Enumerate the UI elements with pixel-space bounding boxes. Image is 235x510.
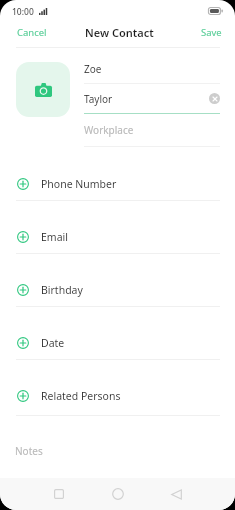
staticText: Email: [41, 230, 68, 244]
staticText: Phone Number: [41, 177, 117, 191]
staticText: Date: [41, 336, 65, 350]
button[interactable]: Zoe: [84, 56, 220, 82]
staticText: Related Persons: [41, 389, 121, 403]
staticText: Zoe: [84, 62, 102, 76]
staticText: Notes: [15, 444, 43, 458]
button[interactable]: Date: [0, 317, 235, 369]
button[interactable]: Workplace: [84, 117, 220, 143]
button[interactable]: Clear text: [209, 93, 220, 104]
button[interactable]: Taylor: [84, 86, 220, 112]
button[interactable]: Recents: [44, 478, 74, 510]
staticText: Taylor: [84, 92, 113, 106]
button[interactable]: Add photo: [16, 62, 70, 117]
staticText: Cancel: [17, 26, 47, 39]
staticText: Save: [201, 26, 222, 39]
button[interactable]: Related Persons: [0, 370, 235, 422]
staticText: Birthday: [41, 283, 83, 297]
button[interactable]: Cancel: [0, 10, 60, 54]
staticText: New Contact: [85, 25, 154, 40]
button[interactable]: Phone Number: [0, 158, 235, 210]
staticText: Workplace: [84, 123, 134, 137]
button[interactable]: Back: [161, 478, 191, 510]
staticText: 10:00: [12, 6, 34, 18]
button[interactable]: Save: [188, 10, 235, 54]
button[interactable]: Email: [0, 211, 235, 263]
button[interactable]: Home: [103, 478, 133, 510]
button[interactable]: Birthday: [0, 264, 235, 316]
